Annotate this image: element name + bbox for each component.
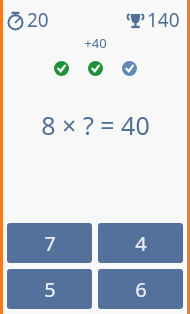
button[interactable]: 7 [7,223,92,263]
staticText: 6 [135,276,147,303]
staticText: +40 [84,34,107,52]
button[interactable]: 5 [7,269,92,309]
button[interactable]: Score [95,7,186,33]
staticText: 20 [27,7,49,33]
staticText: 7 [44,230,56,257]
other: Score [126,11,145,30]
other: Timer [6,11,25,30]
staticText: 140 [147,7,180,33]
staticText: 8 × ? = 40 [41,108,150,142]
staticText: 4 [135,230,147,257]
button[interactable]: 6 [98,269,183,309]
staticText: 5 [44,276,56,303]
button[interactable]: 4 [98,223,183,263]
button[interactable]: Timer [4,7,95,33]
